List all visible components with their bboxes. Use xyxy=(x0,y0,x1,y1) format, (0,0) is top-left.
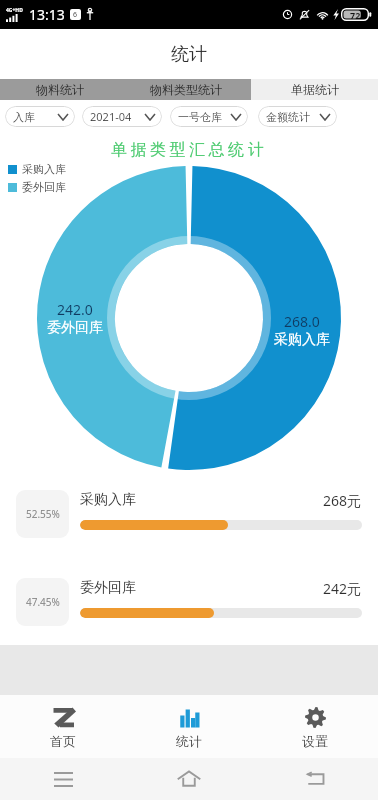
button[interactable]: 2021-04 xyxy=(82,106,162,127)
staticText: 金额统计 xyxy=(266,110,310,124)
staticText: 采购入库 xyxy=(80,491,136,509)
staticText: 首页 xyxy=(50,733,76,749)
staticText: 47.45% xyxy=(26,595,60,609)
staticText: 242元 xyxy=(323,579,362,598)
staticText: 物料类型统计 xyxy=(150,82,222,97)
button[interactable]: 设置 xyxy=(252,695,378,758)
staticText: 单据统计 xyxy=(291,82,339,97)
staticText: 4G+HD xyxy=(6,7,23,14)
staticText: 采购入库 xyxy=(22,162,66,176)
staticText: 6 xyxy=(73,10,78,20)
staticText: 13:13 xyxy=(29,5,65,24)
button[interactable]: 统计 xyxy=(126,695,252,758)
staticText: 统计 xyxy=(171,43,207,66)
staticText: 2021-04 xyxy=(90,109,132,124)
staticText: 委外回库 xyxy=(47,319,103,337)
button[interactable]: 入库 xyxy=(5,106,75,127)
staticText: 242.0 xyxy=(57,300,93,319)
staticText: 统计 xyxy=(176,733,202,749)
staticText: 入库 xyxy=(13,110,35,124)
staticText: 委外回库 xyxy=(80,579,136,597)
button[interactable]: 一号仓库 xyxy=(170,106,248,127)
staticText: 268.0 xyxy=(284,312,320,331)
staticText: 72 xyxy=(350,9,361,21)
staticText: 委外回库 xyxy=(22,180,66,194)
button[interactable]: 单据统计 xyxy=(251,79,378,100)
staticText: 物料统计 xyxy=(36,82,84,97)
button[interactable]: 47.45% xyxy=(0,578,378,628)
staticText: 采购入库 xyxy=(274,331,330,349)
button[interactable]: 金额统计 xyxy=(258,106,337,127)
button[interactable]: 52.55% xyxy=(0,490,378,540)
staticText: 52.55% xyxy=(26,507,60,521)
button[interactable]: Back xyxy=(252,758,378,800)
button[interactable]: 首页 xyxy=(0,695,126,758)
button[interactable]: 物料统计 xyxy=(0,79,120,100)
button[interactable]: Home xyxy=(126,758,252,800)
staticText: 单据类型汇总统计 xyxy=(111,140,268,160)
button[interactable]: 物料类型统计 xyxy=(120,79,251,100)
staticText: 一号仓库 xyxy=(178,110,222,124)
button[interactable]: Recents xyxy=(0,758,126,800)
staticText: 268元 xyxy=(323,491,362,510)
staticText: 设置 xyxy=(302,733,328,749)
